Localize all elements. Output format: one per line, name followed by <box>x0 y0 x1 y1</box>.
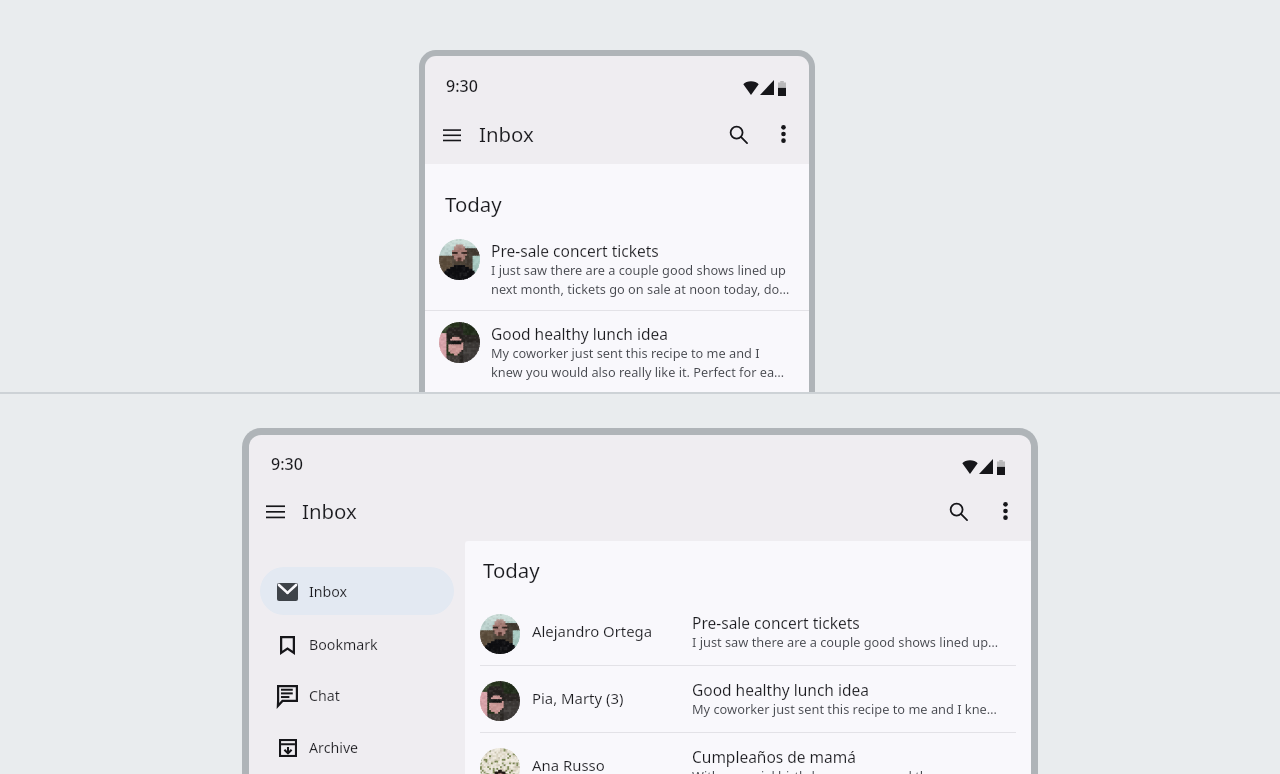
button[interactable]: Pia, Marty (3) <box>465 665 1031 732</box>
staticText: Cumpleaños de mamá <box>692 746 856 767</box>
staticText: I just saw there are a couple good shows… <box>692 633 999 650</box>
button[interactable]: More options <box>988 494 1022 528</box>
staticText: knew you would also really like it. Perf… <box>491 363 785 380</box>
staticText: Good healthy lunch idea <box>692 679 869 700</box>
staticText: My coworker just sent this recipe to me … <box>491 344 760 361</box>
button[interactable]: Search <box>722 118 754 150</box>
staticText: 9:30 <box>271 453 303 475</box>
staticText: I just saw there are a couple good shows… <box>491 261 786 278</box>
staticText: Pre-sale concert tickets <box>692 612 860 633</box>
button[interactable]: Archive <box>260 723 454 771</box>
button[interactable]: Inbox <box>260 567 454 615</box>
button[interactable]: Ana Russo <box>465 732 1031 774</box>
staticText: next month, tickets go on sale at noon t… <box>491 280 790 297</box>
staticText: Archive <box>309 738 359 757</box>
button[interactable]: Navigation menu <box>436 118 468 150</box>
button[interactable]: Navigation menu <box>258 494 292 528</box>
button[interactable]: Pre-sale concert tickets <box>425 228 809 310</box>
staticText: Today <box>483 556 540 584</box>
staticText: Inbox <box>309 582 348 601</box>
staticText: With a special birthday message and the … <box>692 767 1004 774</box>
staticText: My coworker just sent this recipe to me … <box>692 700 997 717</box>
staticText: Inbox <box>479 120 534 148</box>
staticText: Pia, Marty (3) <box>532 688 624 708</box>
staticText: Today <box>445 190 502 218</box>
button[interactable]: Good healthy lunch idea <box>425 311 809 392</box>
staticText: Inbox <box>302 497 357 525</box>
button[interactable]: Search <box>941 494 975 528</box>
staticText: Alejandro Ortega <box>532 621 653 641</box>
staticText: Pre-sale concert tickets <box>491 240 659 261</box>
staticText: 9:30 <box>446 75 478 97</box>
staticText: Ana Russo <box>532 755 605 774</box>
staticText: Chat <box>309 686 340 705</box>
staticText: Bookmark <box>309 635 378 654</box>
staticText: Good healthy lunch idea <box>491 323 668 344</box>
button[interactable]: Chat <box>260 671 454 719</box>
button[interactable]: More options <box>767 118 799 150</box>
button[interactable]: Bookmark <box>260 620 454 668</box>
button[interactable]: Alejandro Ortega <box>465 598 1031 665</box>
